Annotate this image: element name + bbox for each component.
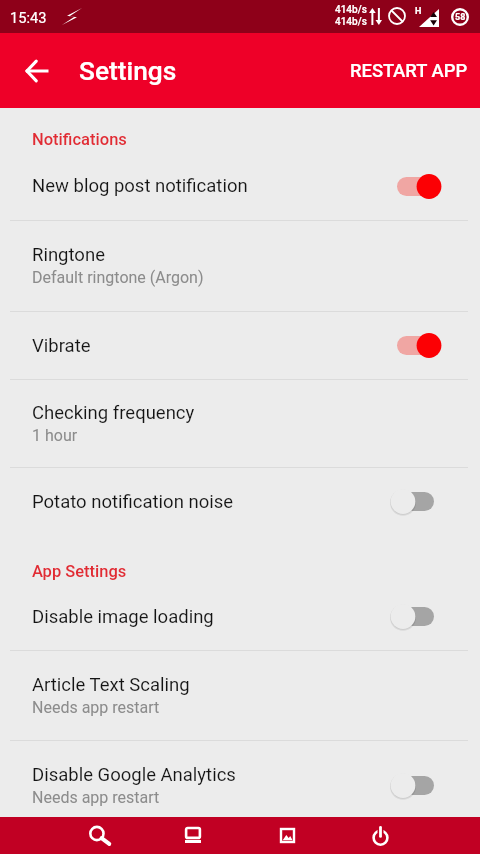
staticText: Disable Google Analytics [32, 764, 236, 786]
staticText: New blog post notification [32, 175, 390, 197]
staticText: App Settings [32, 562, 127, 581]
staticText: 15:43 [10, 9, 47, 26]
button[interactable]: Checking frequency [0, 379, 480, 467]
button[interactable]: Ringtone [0, 220, 480, 311]
staticText: Notifications [32, 130, 127, 149]
button[interactable]: RESTART APP [336, 50, 480, 88]
staticText: Default ringtone (Argon) [32, 268, 204, 287]
staticText: Ringtone [32, 244, 105, 266]
button[interactable]: New blog post notification [0, 152, 480, 220]
button[interactable]: Potato notification noise [0, 467, 480, 536]
button[interactable]: Images [261, 817, 313, 854]
staticText: Article Text Scaling [32, 674, 190, 696]
staticText: 414b/s [335, 4, 367, 16]
button[interactable]: Disable Google Analytics [0, 740, 480, 830]
button[interactable]: Article Text Scaling [0, 650, 480, 740]
staticText: 58 [455, 12, 466, 23]
button[interactable]: Vibrate [0, 311, 480, 380]
staticText: RESTART APP [350, 60, 468, 82]
button[interactable]: Search [74, 817, 126, 854]
staticText: Settings [79, 56, 177, 87]
staticText: Needs app restart [32, 698, 160, 717]
button[interactable]: Power [354, 817, 406, 854]
staticText: Vibrate [32, 335, 390, 357]
staticText: Checking frequency [32, 402, 195, 424]
button[interactable]: Disable image loading [0, 582, 480, 651]
staticText: Disable image loading [32, 606, 390, 628]
staticText: Potato notification noise [32, 491, 390, 513]
staticText: H [415, 6, 422, 17]
staticText: 1 hour [32, 426, 78, 445]
button[interactable]: Back [13, 47, 61, 95]
staticText: Needs app restart [32, 788, 160, 807]
staticText: 414b/s [335, 16, 367, 28]
button[interactable]: Articles [167, 817, 219, 854]
